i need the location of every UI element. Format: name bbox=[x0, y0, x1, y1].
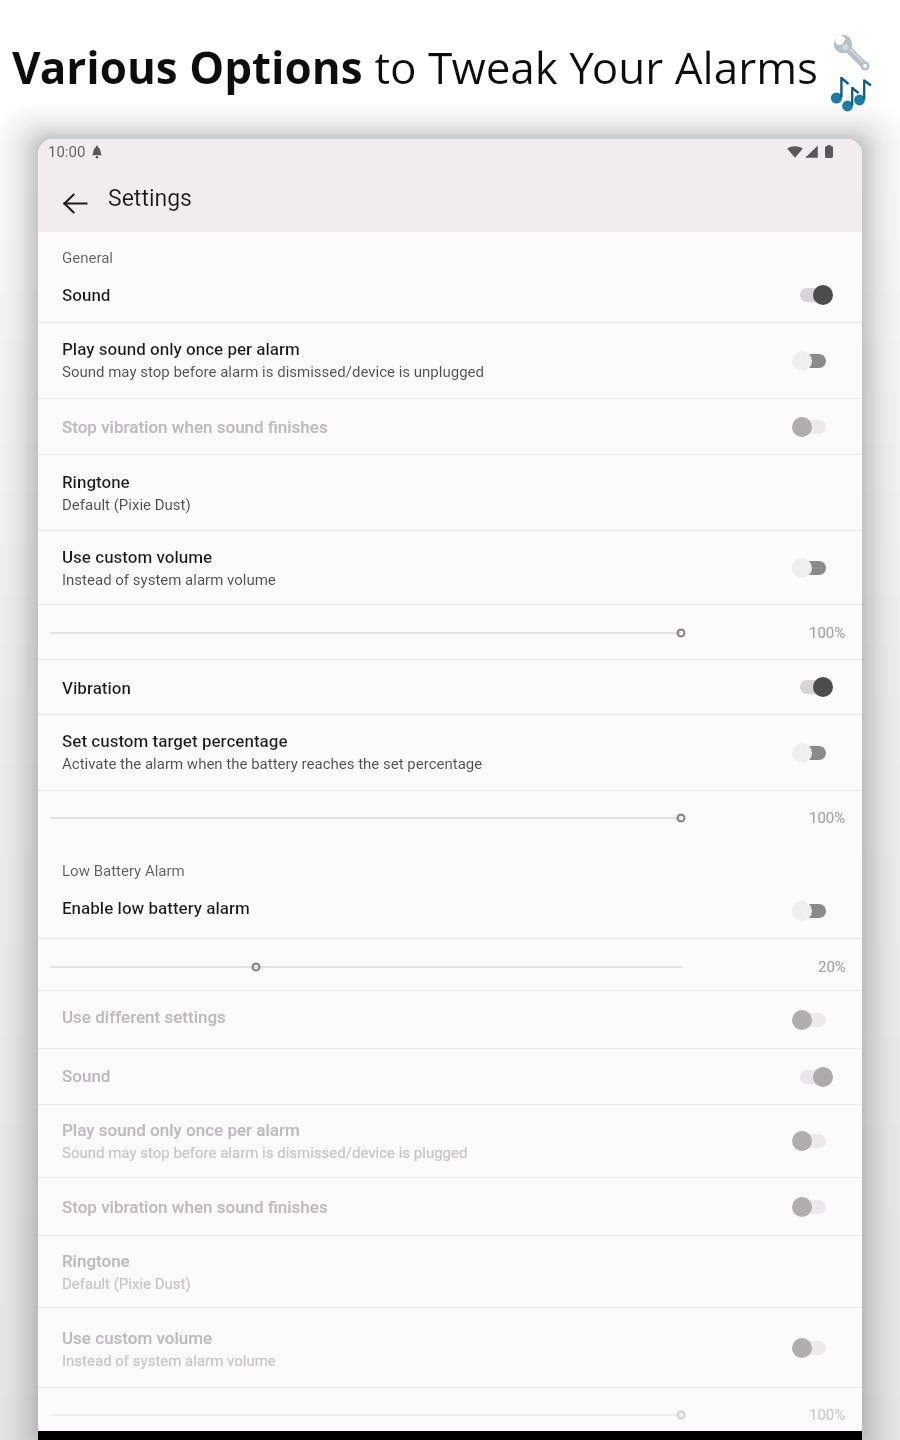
button[interactable]: Back bbox=[51, 179, 99, 227]
button[interactable]: 100% bbox=[38, 1388, 862, 1432]
button[interactable]: Toggle bbox=[785, 271, 845, 319]
staticText: 10:00 bbox=[48, 143, 86, 161]
button[interactable]: Ringtone bbox=[38, 455, 862, 530]
staticText: Sound bbox=[62, 1066, 111, 1086]
button[interactable]: Play sound only once per alarm bbox=[38, 1105, 862, 1177]
button[interactable]: Sound bbox=[38, 1049, 862, 1104]
button[interactable]: Toggle bbox=[785, 1324, 845, 1372]
staticText: Stop vibration when sound finishes bbox=[62, 1197, 328, 1217]
staticText: Use custom volume bbox=[62, 547, 213, 567]
button[interactable]: Play sound only once per alarm bbox=[38, 323, 862, 398]
button[interactable]: Toggle bbox=[785, 544, 845, 592]
button[interactable]: Toggle bbox=[785, 663, 845, 711]
staticText: 100% bbox=[809, 809, 846, 827]
button[interactable]: Toggle bbox=[785, 1117, 845, 1165]
button[interactable]: 20% bbox=[38, 939, 862, 990]
staticText: Stop vibration when sound finishes bbox=[62, 417, 328, 437]
staticText: Sound may stop before alarm is dismissed… bbox=[62, 363, 484, 381]
staticText: Use custom volume bbox=[62, 1328, 213, 1348]
button[interactable]: Vibration bbox=[38, 660, 862, 714]
staticText: Play sound only once per alarm bbox=[62, 339, 300, 359]
staticText: 100% bbox=[809, 624, 846, 642]
staticText: Enable low battery alarm bbox=[62, 898, 250, 918]
button[interactable]: Stop vibration when sound finishes bbox=[38, 1178, 862, 1235]
button[interactable]: Set custom target percentage bbox=[38, 715, 862, 790]
staticText: Play sound only once per alarm bbox=[62, 1120, 300, 1140]
button[interactable]: Toggle bbox=[785, 403, 845, 451]
button[interactable]: Toggle bbox=[785, 1183, 845, 1231]
button[interactable]: Toggle bbox=[785, 337, 845, 385]
staticText: Activate the alarm when the battery reac… bbox=[62, 755, 483, 773]
button[interactable]: Toggle bbox=[785, 729, 845, 777]
button[interactable]: Toggle bbox=[785, 996, 845, 1044]
staticText: Sound may stop before alarm is dismissed… bbox=[62, 1144, 468, 1162]
button[interactable]: Ringtone bbox=[38, 1236, 862, 1307]
staticText: Default (Pixie Dust) bbox=[62, 1275, 191, 1293]
staticText: General bbox=[62, 249, 114, 267]
staticText: Ringtone bbox=[62, 1251, 130, 1271]
staticText: Vibration bbox=[62, 678, 132, 698]
button[interactable]: Use custom volume bbox=[38, 531, 862, 604]
staticText: Low Battery Alarm bbox=[62, 862, 185, 880]
staticText: Various Options bbox=[12, 37, 363, 97]
button[interactable]: Stop vibration when sound finishes bbox=[38, 399, 862, 454]
staticText: Settings bbox=[108, 185, 192, 212]
staticText: Use different settings bbox=[62, 1007, 226, 1027]
staticText: to Tweak Your Alarms bbox=[363, 37, 819, 97]
button[interactable]: Use custom volume bbox=[38, 1308, 862, 1387]
button[interactable]: Toggle bbox=[785, 887, 845, 935]
button[interactable]: Toggle bbox=[785, 1053, 845, 1101]
staticText: 100% bbox=[809, 1406, 846, 1424]
staticText: Instead of system alarm volume bbox=[62, 571, 276, 589]
staticText: Sound bbox=[62, 285, 111, 305]
staticText: Default (Pixie Dust) bbox=[62, 496, 191, 514]
staticText: Instead of system alarm volume bbox=[62, 1352, 276, 1370]
staticText: Set custom target percentage bbox=[62, 731, 288, 751]
button[interactable]: Use different settings bbox=[38, 991, 862, 1048]
staticText: Ringtone bbox=[62, 472, 130, 492]
button[interactable]: General bbox=[38, 232, 862, 322]
staticText: 20% bbox=[818, 958, 846, 976]
button[interactable]: 100% bbox=[38, 605, 862, 659]
button[interactable]: Low Battery Alarm bbox=[38, 845, 862, 938]
button[interactable]: 100% bbox=[38, 791, 862, 845]
